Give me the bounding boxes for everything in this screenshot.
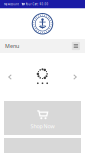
button[interactable]: Menu — [72, 42, 80, 50]
staticText: Shop Now — [30, 123, 54, 130]
button[interactable]: Your Cart: $0.00 — [22, 2, 49, 6]
staticText: Menu — [5, 42, 19, 50]
button[interactable]: Menu — [5, 42, 19, 50]
staticText: Your Cart: $0.00 — [26, 2, 49, 6]
button[interactable]: Previous slide — [0, 55, 20, 99]
button[interactable]: My Account — [4, 2, 19, 6]
button[interactable]: Next slide — [65, 55, 85, 99]
staticText: My Account — [4, 2, 19, 6]
button[interactable]: Shop Now — [4, 101, 81, 135]
